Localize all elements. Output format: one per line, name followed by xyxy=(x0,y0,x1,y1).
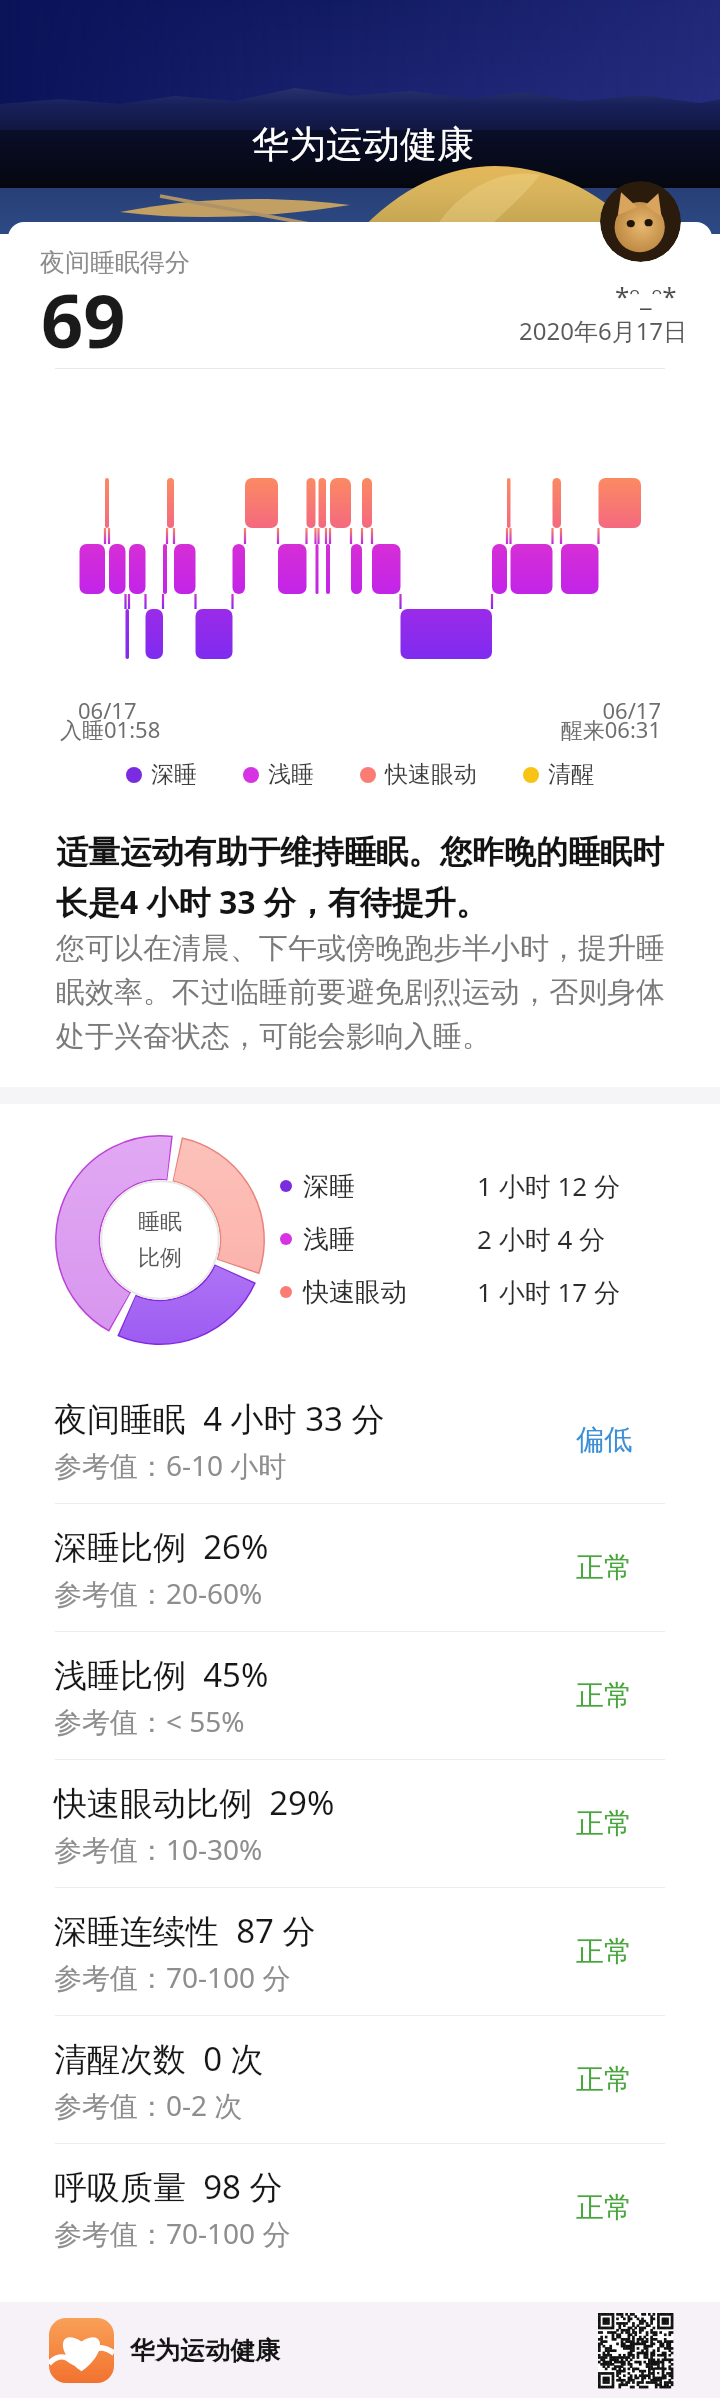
staticText: 深睡连续性 87 分 xyxy=(54,1908,316,1953)
staticText: 快速眼动比例 29% xyxy=(54,1780,335,1825)
button[interactable]: 夜间睡眠 4 小时 33 分 xyxy=(0,1376,720,1503)
staticText: 醒来06:31 xyxy=(0,714,661,744)
staticText: 夜间睡眠得分 xyxy=(40,247,190,278)
button[interactable]: QR code xyxy=(598,2313,673,2388)
staticText: 正常 xyxy=(576,2062,632,2097)
staticText: 参考值：70-100 分 xyxy=(54,1958,291,1996)
button[interactable]: 清醒次数 0 次 xyxy=(0,2016,720,2143)
button[interactable]: 浅睡比例 45% xyxy=(0,1632,720,1759)
staticText: 浅睡 xyxy=(303,1223,477,1256)
staticText: 2020年6月17日 xyxy=(519,314,688,347)
staticText: 入睡01:58 xyxy=(60,714,161,744)
staticText: 浅睡比例 45% xyxy=(54,1652,269,1697)
button[interactable]: 快速眼动比例 29% xyxy=(0,1760,720,1887)
staticText: 69 xyxy=(41,269,126,370)
staticText: 呼吸质量 98 分 xyxy=(54,2164,283,2209)
staticText: 参考值：6-10 小时 xyxy=(54,1446,287,1484)
staticText: 2 小时 4 分 xyxy=(477,1221,606,1257)
staticText: 快速眼动 xyxy=(303,1276,477,1309)
staticText: 1 小时 12 分 xyxy=(477,1168,620,1204)
button[interactable]: 华为运动健康 xyxy=(0,2302,720,2398)
staticText: 参考值：20-60% xyxy=(54,1574,263,1612)
staticText: 华为运动健康 xyxy=(252,121,474,168)
button[interactable]: 深睡比例 26% xyxy=(0,1504,720,1631)
staticText: *ᵔ_ᵔ* xyxy=(615,278,677,313)
staticText: 华为运动健康 xyxy=(130,2335,280,2366)
staticText: 正常 xyxy=(576,1550,632,1585)
staticText: 适量运动有助于维持睡眠。您昨晚的睡眠时长是4 小时 33 分，有待提升。 xyxy=(56,832,678,924)
staticText: 06/17 xyxy=(78,695,137,725)
button[interactable]: Profile xyxy=(600,181,681,262)
staticText: 1 小时 17 分 xyxy=(477,1274,620,1310)
staticText: 深睡 xyxy=(151,760,197,789)
button[interactable]: 呼吸质量 98 分 xyxy=(0,2144,720,2271)
staticText: 正常 xyxy=(576,1934,632,1969)
button[interactable]: 深睡连续性 87 分 xyxy=(0,1888,720,2015)
staticText: 正常 xyxy=(576,1806,632,1841)
staticText: 深睡 xyxy=(303,1170,477,1203)
staticText: 您可以在清晨、下午或傍晚跑步半小时，提升睡 眠效率。不过临睡前要避免剧烈运动，否… xyxy=(56,930,665,1054)
staticText: 参考值：10-30% xyxy=(54,1830,263,1868)
staticText: 快速眼动 xyxy=(385,760,477,789)
staticText: 参考值：< 55% xyxy=(54,1702,245,1740)
staticText: 清醒 xyxy=(548,760,594,789)
staticText: 参考值：0-2 次 xyxy=(54,2086,243,2124)
staticText: 清醒次数 0 次 xyxy=(54,2036,264,2081)
staticText: 夜间睡眠 4 小时 33 分 xyxy=(54,1396,385,1441)
staticText: 正常 xyxy=(576,1678,632,1713)
staticText: 偏低 xyxy=(576,1422,632,1457)
staticText: 深睡比例 26% xyxy=(54,1524,269,1569)
staticText: 06/17 xyxy=(0,695,661,725)
staticText: 浅睡 xyxy=(268,760,314,789)
staticText: 参考值：70-100 分 xyxy=(54,2214,291,2252)
staticText: 睡眠 xyxy=(138,1208,182,1236)
staticText: 比例 xyxy=(138,1244,182,1272)
staticText: 正常 xyxy=(576,2190,632,2225)
